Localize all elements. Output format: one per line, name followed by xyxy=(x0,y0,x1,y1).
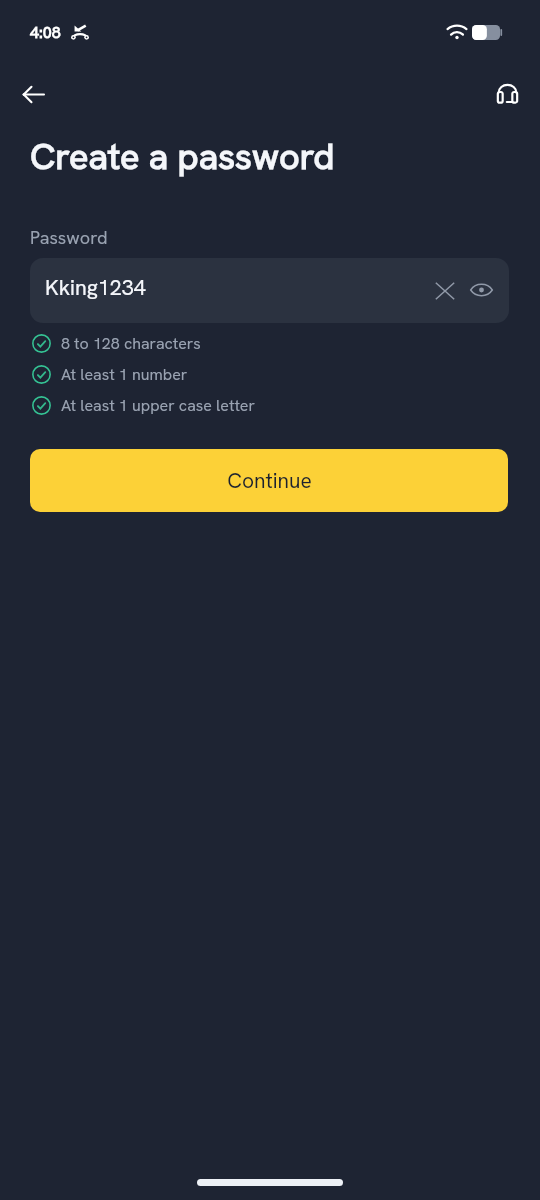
button[interactable]: Support xyxy=(485,72,529,116)
staticText: Kking1234 xyxy=(45,273,146,301)
staticText: At least 1 upper case letter xyxy=(61,395,255,416)
button[interactable]: Clear xyxy=(423,271,463,311)
staticText: Continue xyxy=(227,467,312,494)
staticText: 8 to 128 characters xyxy=(61,333,201,354)
staticText: At least 1 number xyxy=(61,364,188,385)
button[interactable]: Kking1234 xyxy=(30,258,509,323)
button[interactable]: Back xyxy=(11,72,55,116)
staticText: Create a password xyxy=(30,133,335,180)
button[interactable]: Show password xyxy=(463,271,503,311)
staticText: 4:08 xyxy=(30,22,61,43)
button[interactable]: Continue xyxy=(30,449,508,512)
staticText: Password xyxy=(30,226,108,249)
